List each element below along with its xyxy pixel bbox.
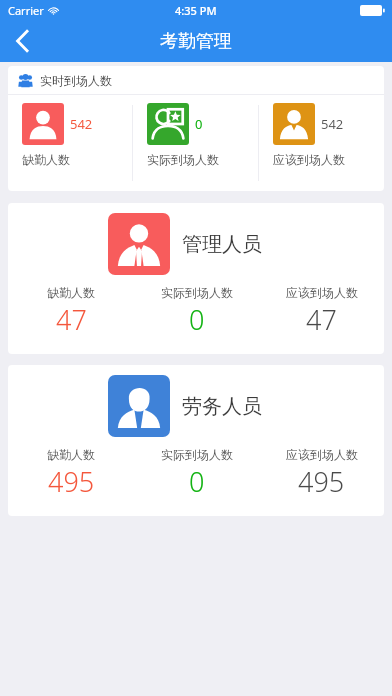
- staticText: 47: [56, 301, 87, 338]
- button[interactable]: Back: [0, 20, 44, 62]
- button[interactable]: 0: [133, 95, 258, 191]
- staticText: 实际到场人数: [147, 152, 219, 167]
- staticText: 应该到场人数: [273, 152, 345, 167]
- staticText: 0: [195, 115, 203, 133]
- staticText: 考勤管理: [160, 30, 232, 53]
- button[interactable]: 应该到场人数: [259, 447, 384, 500]
- button[interactable]: 缺勤人数: [8, 285, 134, 338]
- staticText: 劳务人员: [182, 394, 262, 419]
- staticText: 实时到场人数: [40, 73, 112, 88]
- staticText: Carrier: [8, 3, 44, 18]
- button[interactable]: 实时到场人数: [8, 66, 384, 191]
- staticText: 缺勤人数: [22, 152, 70, 167]
- staticText: 495: [298, 463, 345, 500]
- staticText: 缺勤人数: [47, 285, 95, 300]
- button[interactable]: 实际到场人数: [134, 447, 259, 500]
- staticText: 实际到场人数: [161, 447, 233, 462]
- button[interactable]: 实际到场人数: [134, 285, 259, 338]
- staticText: 0: [189, 301, 205, 338]
- button[interactable]: 劳务人员: [8, 365, 384, 516]
- staticText: 542: [321, 115, 344, 133]
- staticText: 47: [306, 301, 337, 338]
- staticText: 495: [48, 463, 95, 500]
- staticText: 应该到场人数: [286, 285, 358, 300]
- staticText: 管理人员: [182, 232, 262, 257]
- staticText: 0: [189, 463, 205, 500]
- staticText: 缺勤人数: [47, 447, 95, 462]
- staticText: 542: [70, 115, 93, 133]
- button[interactable]: 542: [8, 95, 132, 191]
- staticText: 应该到场人数: [286, 447, 358, 462]
- button[interactable]: 缺勤人数: [8, 447, 134, 500]
- staticText: 4:35 PM: [175, 3, 217, 18]
- button[interactable]: 应该到场人数: [259, 285, 384, 338]
- button[interactable]: 管理人员: [8, 203, 384, 354]
- button[interactable]: 542: [259, 95, 384, 191]
- staticText: 实际到场人数: [161, 285, 233, 300]
